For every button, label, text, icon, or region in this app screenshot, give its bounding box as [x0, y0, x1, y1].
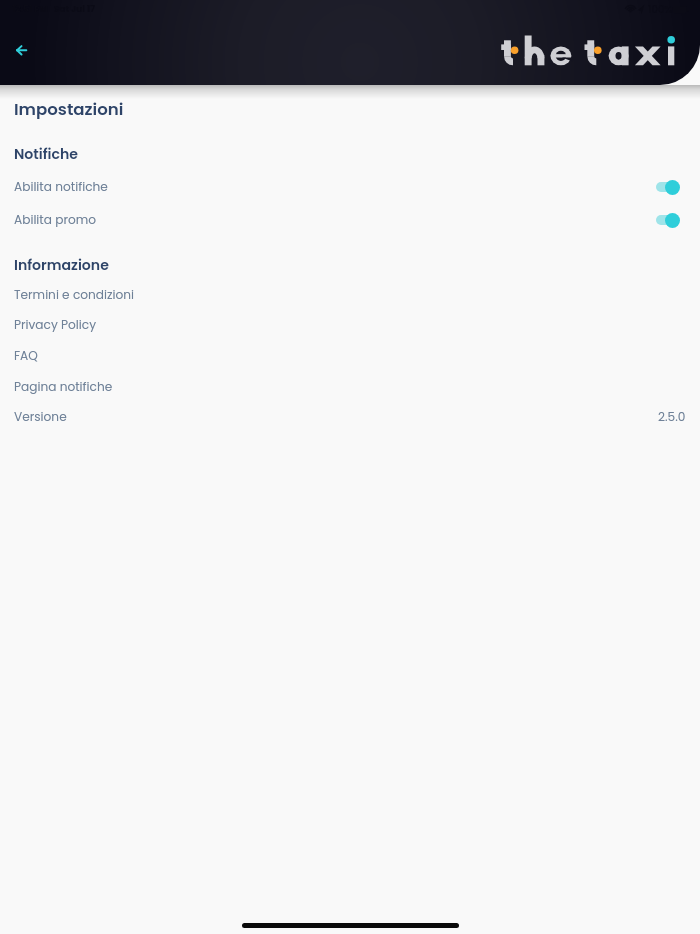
staticText: FAQ: [14, 347, 38, 364]
button[interactable]: Termini e condizioni: [0, 279, 700, 310]
staticText: Privacy Policy: [14, 316, 96, 333]
button[interactable]: Pagina notifiche: [0, 371, 700, 402]
button[interactable]: Abilita promo: [0, 204, 700, 235]
button[interactable]: Abilita notifiche: [0, 171, 700, 202]
staticText: Informazione: [14, 255, 109, 275]
staticText: Termini e condizioni: [14, 286, 135, 303]
button[interactable]: FAQ: [0, 340, 700, 371]
staticText: Notifiche: [14, 144, 79, 164]
staticText: Abilita promo: [14, 211, 96, 228]
button[interactable]: Privacy Policy: [0, 309, 700, 340]
staticText: Pagina notifiche: [14, 378, 113, 395]
button[interactable]: Back: [7, 36, 36, 65]
staticText: Versione: [14, 408, 67, 425]
button[interactable]: Versione: [0, 401, 700, 432]
staticText: Abilita notifiche: [14, 178, 108, 195]
staticText: 2.5.0: [658, 408, 686, 425]
staticText: Impostazioni: [14, 98, 124, 121]
